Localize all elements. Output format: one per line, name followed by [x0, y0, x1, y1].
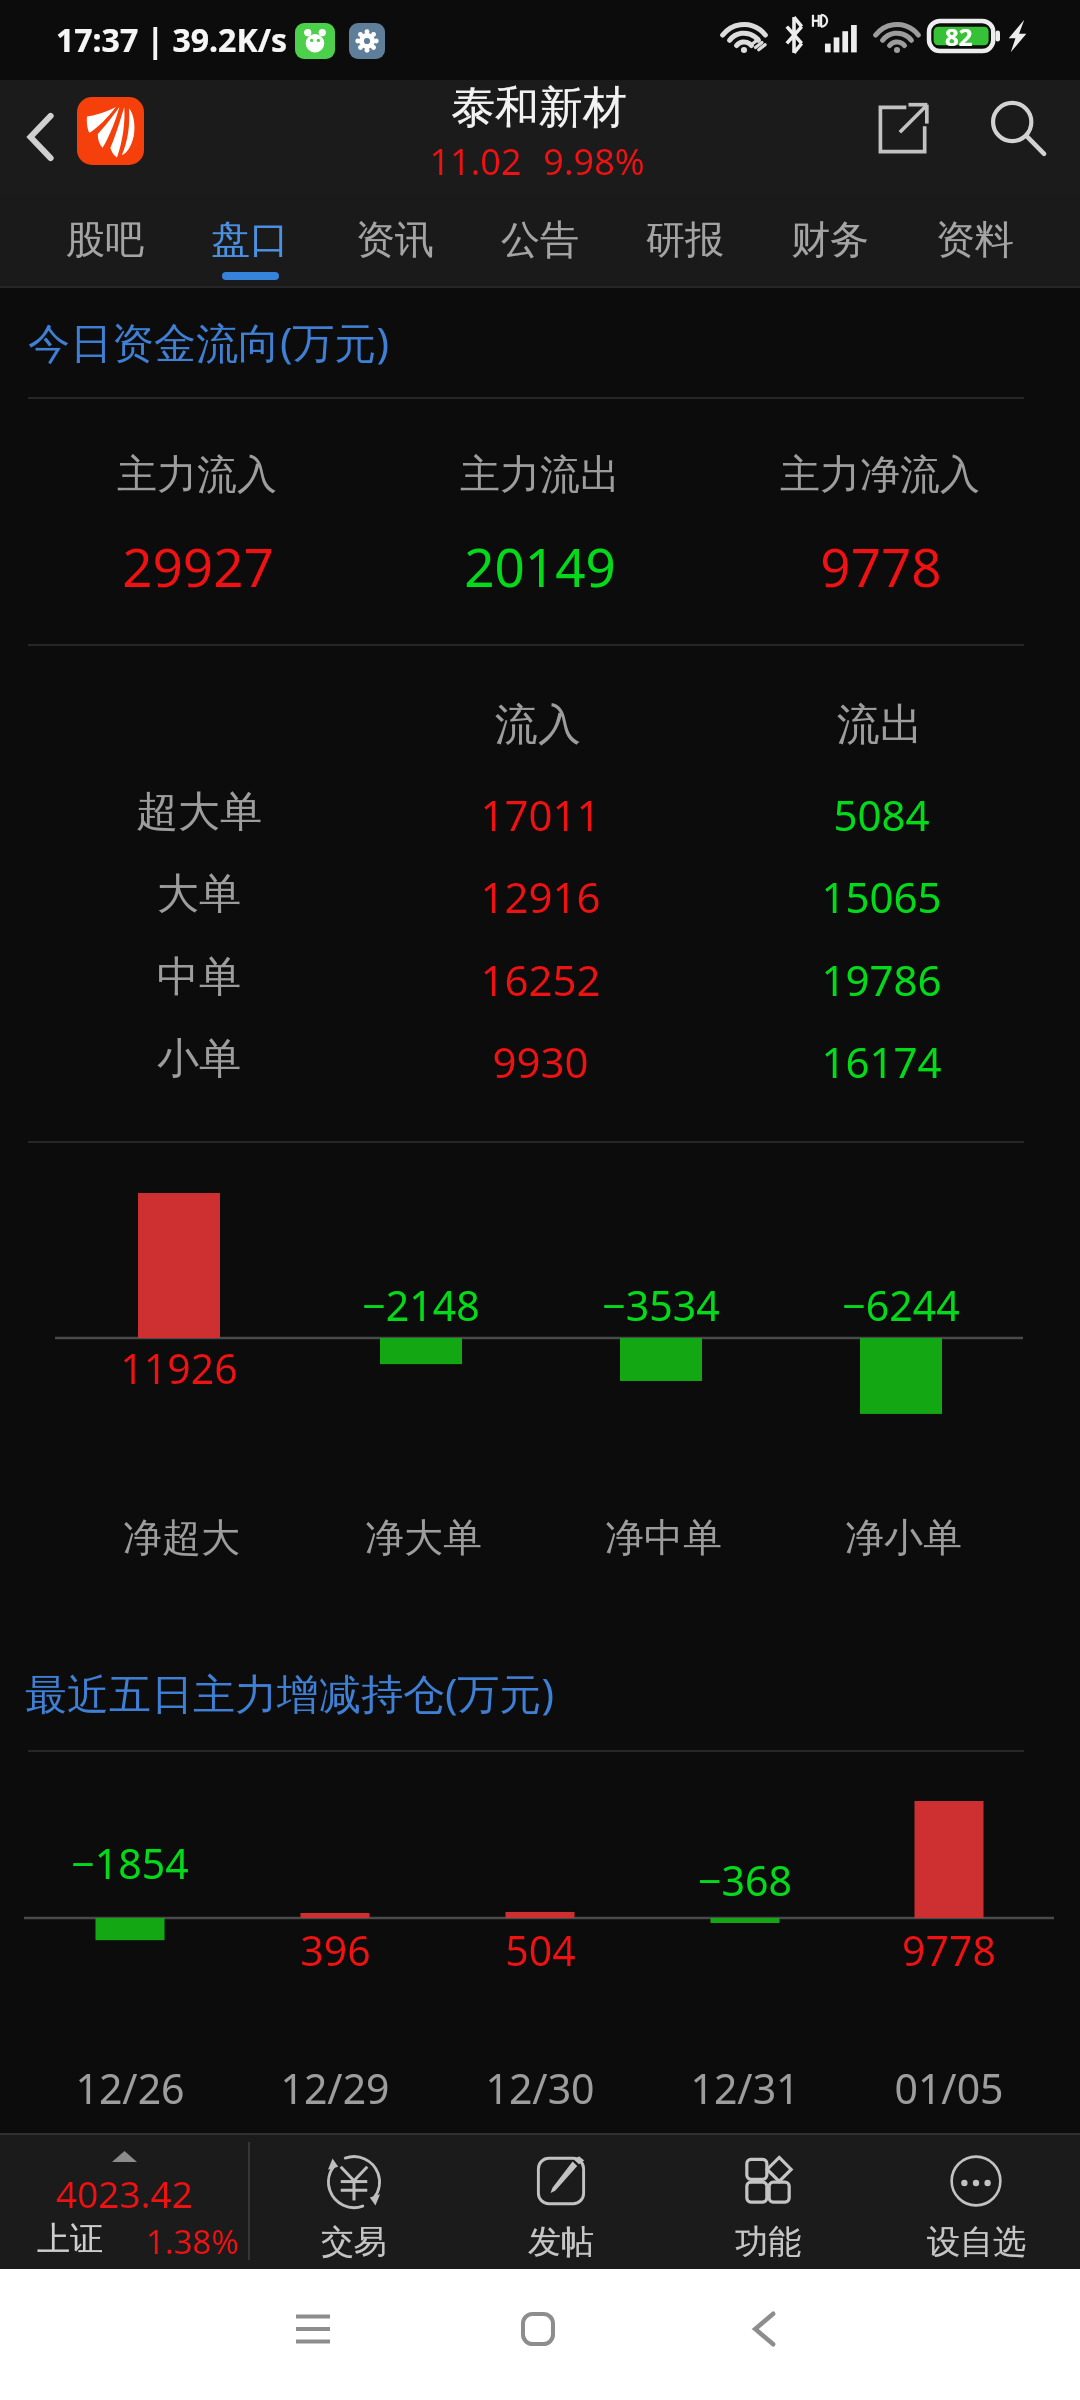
staticText: 16252: [480, 951, 601, 1008]
staticText: 功能: [735, 2221, 801, 2263]
button[interactable]: Back: [724, 2289, 804, 2369]
button[interactable]: Home: [498, 2289, 578, 2369]
staticText: 1.38%: [146, 2219, 239, 2264]
staticText: 9778: [820, 530, 942, 602]
button[interactable]: Back: [4, 101, 76, 173]
staticText: 19786: [821, 951, 942, 1008]
staticText: 15065: [821, 868, 942, 925]
staticText: −1854: [71, 1835, 189, 1891]
staticText: 396: [300, 1922, 371, 1978]
staticText: 大单: [157, 868, 241, 921]
staticText: 82: [945, 20, 973, 52]
staticText: 12/30: [485, 2060, 595, 2116]
staticText: 01/05: [894, 2060, 1004, 2116]
staticText: 主力流入: [117, 449, 277, 499]
button[interactable]: 股吧: [33, 194, 177, 288]
staticText: 公告: [501, 215, 579, 264]
button[interactable]: 公告: [468, 194, 612, 288]
staticText: 12916: [480, 868, 601, 925]
staticText: −368: [698, 1852, 792, 1908]
button[interactable]: Search: [972, 83, 1064, 175]
staticText: 9.98%: [543, 137, 645, 186]
staticText: 今日资金流向(万元): [28, 313, 390, 370]
button[interactable]: 盘口: [178, 194, 322, 288]
button[interactable]: 4023.42: [0, 2133, 248, 2269]
staticText: 16174: [821, 1033, 942, 1090]
staticText: 小单: [157, 1033, 241, 1086]
staticText: 资料: [936, 215, 1014, 264]
button[interactable]: 发帖: [457, 2133, 664, 2269]
staticText: −6244: [842, 1277, 960, 1333]
staticText: 主力净流入: [780, 449, 980, 499]
staticText: 9930: [492, 1033, 589, 1090]
button[interactable]: 财务: [758, 194, 902, 288]
staticText: 净大单: [365, 1513, 482, 1562]
staticText: 净超大: [123, 1513, 240, 1562]
staticText: 发帖: [528, 2221, 594, 2263]
staticText: 财务: [791, 215, 869, 264]
staticText: 4023.42: [56, 2168, 193, 2218]
staticText: 上证: [37, 2218, 103, 2260]
staticText: 9778: [902, 1922, 996, 1978]
staticText: 中单: [157, 951, 241, 1004]
staticText: 盘口: [211, 215, 289, 264]
staticText: 11926: [120, 1340, 238, 1396]
button[interactable]: 研报: [613, 194, 757, 288]
button[interactable]: 资讯: [323, 194, 467, 288]
button[interactable]: Recent apps: [273, 2289, 353, 2369]
staticText: 20149: [464, 530, 616, 602]
staticText: 29927: [122, 530, 274, 602]
staticText: 股吧: [66, 215, 144, 264]
staticText: 净中单: [605, 1513, 722, 1562]
staticText: 12/26: [75, 2060, 185, 2116]
staticText: 504: [505, 1922, 576, 1978]
staticText: −2148: [362, 1277, 480, 1333]
staticText: 交易: [321, 2221, 387, 2263]
staticText: 流出: [837, 698, 923, 752]
button[interactable]: Eastmoney home: [77, 97, 144, 165]
button[interactable]: 功能: [664, 2133, 872, 2269]
button[interactable]: 资料: [903, 194, 1047, 288]
staticText: 设自选: [927, 2221, 1026, 2263]
staticText: −3534: [602, 1277, 720, 1333]
staticText: 11.02: [429, 137, 522, 186]
staticText: 流入: [495, 698, 581, 752]
staticText: 研报: [646, 215, 724, 264]
staticText: 资讯: [356, 215, 434, 264]
button[interactable]: 设自选: [872, 2133, 1080, 2269]
staticText: 主力流出: [460, 449, 620, 499]
staticText: 超大单: [136, 786, 262, 839]
button[interactable]: Share: [856, 83, 948, 175]
button[interactable]: 交易: [250, 2133, 457, 2269]
staticText: 泰和新材: [451, 80, 627, 135]
staticText: 净小单: [845, 1513, 962, 1562]
staticText: 12/29: [280, 2060, 390, 2116]
staticText: 5084: [833, 786, 930, 843]
staticText: 17011: [480, 786, 601, 843]
staticText: 12/31: [690, 2060, 800, 2116]
staticText: 17:37 | 39.2K/s: [56, 18, 287, 62]
staticText: 最近五日主力增减持仓(万元): [25, 1664, 555, 1721]
